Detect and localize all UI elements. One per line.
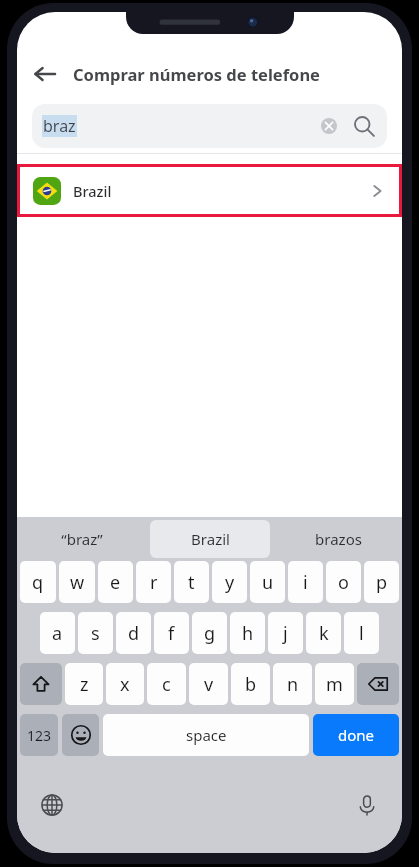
staticText: z	[80, 672, 89, 697]
button[interactable]: v	[189, 663, 228, 705]
button[interactable]: g	[192, 612, 227, 654]
staticText: “braz”	[61, 529, 103, 549]
button[interactable]: p	[364, 561, 399, 603]
staticText: j	[283, 621, 288, 646]
button[interactable]: Emoji	[62, 714, 99, 756]
button[interactable]: Back	[17, 52, 73, 96]
button[interactable]: a	[40, 612, 75, 654]
button[interactable]: w	[59, 561, 95, 603]
staticText: Brazil	[73, 181, 112, 201]
button[interactable]: 123	[20, 714, 58, 756]
button[interactable]: z	[65, 663, 103, 705]
staticText: braz	[43, 115, 76, 137]
button[interactable]: j	[268, 612, 303, 654]
button[interactable]: h	[230, 612, 265, 654]
button[interactable]: l	[344, 612, 379, 654]
button[interactable]: k	[306, 612, 341, 654]
staticText: r	[150, 570, 158, 595]
button[interactable]: f	[154, 612, 189, 654]
button[interactable]: Clear	[314, 111, 344, 141]
staticText: c	[162, 672, 171, 697]
button[interactable]: Backspace	[357, 663, 399, 705]
button[interactable]: r	[136, 561, 171, 603]
staticText: f	[168, 621, 175, 646]
button[interactable]: Search	[347, 109, 381, 143]
staticText: p	[376, 570, 388, 595]
button[interactable]: Shift	[20, 663, 62, 705]
button[interactable]: Change keyboard	[35, 788, 69, 822]
button[interactable]: q	[20, 561, 56, 603]
staticText: l	[359, 621, 364, 646]
button[interactable]: e	[98, 561, 133, 603]
button[interactable]: i	[288, 561, 323, 603]
staticText: d	[128, 621, 140, 646]
button[interactable]: x	[106, 663, 144, 705]
staticText: a	[52, 621, 63, 646]
button[interactable]: n	[273, 663, 312, 705]
button[interactable]: u	[250, 561, 285, 603]
button[interactable]: y	[212, 561, 247, 603]
staticText: Comprar números de telefone	[73, 63, 320, 85]
button[interactable]: Brazil	[17, 164, 402, 217]
button[interactable]: done	[313, 714, 399, 756]
staticText: w	[70, 570, 85, 595]
staticText: s	[91, 621, 100, 646]
staticText: g	[204, 621, 216, 646]
button[interactable]: braz	[32, 104, 387, 148]
staticText: o	[338, 570, 349, 595]
staticText: Brazil	[191, 529, 230, 549]
button[interactable]: b	[231, 663, 270, 705]
button[interactable]: d	[116, 612, 151, 654]
button[interactable]: Voice input	[350, 788, 384, 822]
staticText: u	[262, 570, 274, 595]
staticText: e	[110, 570, 121, 595]
staticText: brazos	[315, 529, 362, 549]
staticText: n	[287, 672, 299, 697]
button[interactable]: Brazil	[150, 520, 270, 558]
staticText: 123	[27, 726, 52, 745]
button[interactable]: c	[147, 663, 186, 705]
staticText: t	[188, 570, 195, 595]
staticText: done	[338, 725, 375, 745]
staticText: m	[326, 672, 343, 697]
staticText: q	[32, 570, 44, 595]
button[interactable]: t	[174, 561, 209, 603]
button[interactable]: o	[326, 561, 361, 603]
staticText: space	[186, 725, 227, 745]
staticText: v	[204, 672, 214, 697]
staticText: i	[303, 570, 308, 595]
button[interactable]: brazos	[278, 520, 398, 558]
button[interactable]: s	[78, 612, 113, 654]
button[interactable]: space	[103, 714, 309, 756]
staticText: y	[225, 570, 235, 595]
staticText: h	[242, 621, 254, 646]
button[interactable]: m	[315, 663, 354, 705]
staticText: b	[245, 672, 257, 697]
button[interactable]: “braz”	[21, 520, 142, 558]
staticText: k	[319, 621, 329, 646]
staticText: x	[120, 672, 130, 697]
